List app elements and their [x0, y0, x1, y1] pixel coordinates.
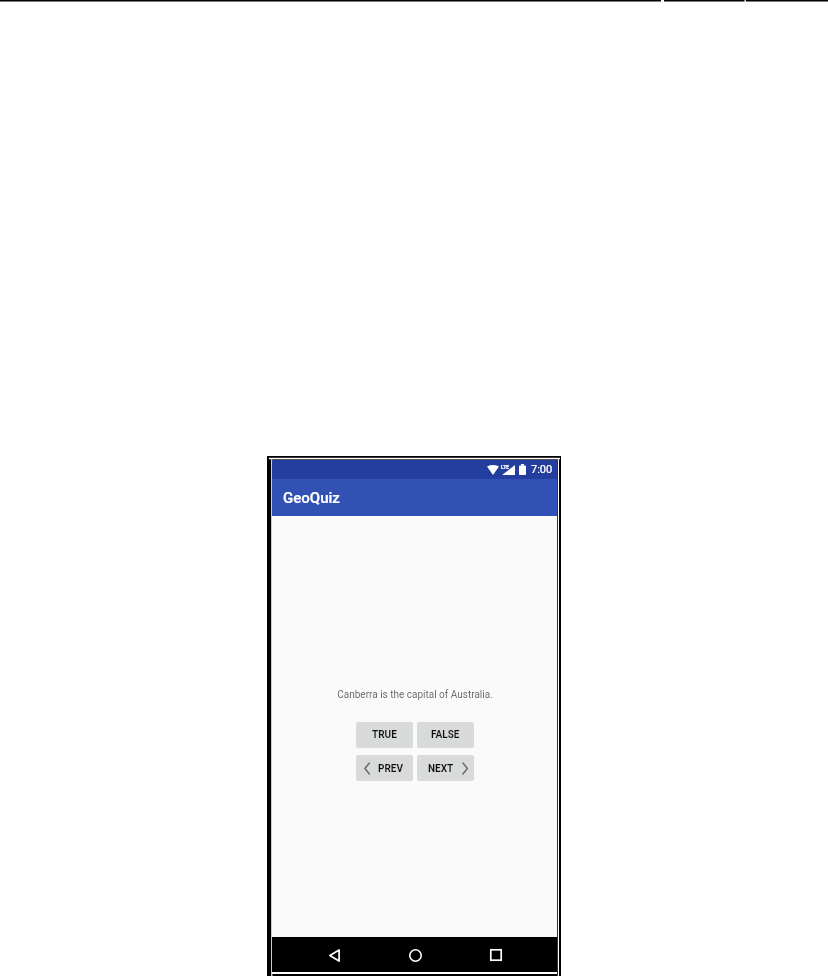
staticText: 7:00: [531, 463, 553, 476]
button[interactable]: Back: [319, 940, 349, 970]
staticText: FALSE: [431, 729, 460, 741]
button[interactable]: TRUE: [356, 722, 413, 748]
staticText: PREV: [378, 763, 403, 775]
staticText: Canberra is the capital of Australia.: [337, 689, 493, 701]
staticText: LTE: [501, 464, 510, 470]
staticText: GeoQuiz: [283, 489, 340, 507]
button[interactable]: PREV: [356, 755, 413, 781]
button[interactable]: FALSE: [417, 722, 474, 748]
button[interactable]: NEXT: [417, 755, 474, 781]
button[interactable]: Home: [400, 940, 430, 970]
button[interactable]: Recents: [481, 940, 511, 970]
staticText: TRUE: [372, 729, 397, 741]
staticText: NEXT: [428, 763, 454, 775]
